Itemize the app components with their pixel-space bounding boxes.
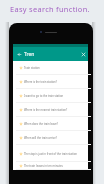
staticText: Train station bbox=[24, 66, 40, 70]
staticText: Where is the train station? bbox=[24, 80, 57, 84]
button[interactable]: Back bbox=[13, 47, 88, 61]
staticText: When does the train leave? bbox=[24, 122, 59, 126]
staticText: The train leaves in ten minutes bbox=[24, 164, 63, 168]
button[interactable]: Train station bbox=[13, 61, 88, 75]
staticText: When will the train arrive? bbox=[24, 136, 57, 140]
button[interactable]: The stop is just in front of the train s… bbox=[13, 145, 88, 162]
button[interactable]: Clear search bbox=[81, 52, 86, 57]
button[interactable]: When does the train leave? bbox=[13, 117, 88, 131]
staticText: Easy search function. bbox=[10, 4, 90, 14]
button[interactable]: Where is the nearest train station? bbox=[13, 103, 88, 117]
button[interactable]: Where is the train station? bbox=[13, 75, 88, 89]
staticText: Where is the nearest train station? bbox=[24, 108, 68, 112]
staticText: I want to go to the train station bbox=[24, 94, 64, 98]
button[interactable]: The train leaves in ten minutes bbox=[13, 162, 88, 170]
staticText: Tren bbox=[24, 51, 35, 58]
staticText: The stop is just in front of the train s… bbox=[24, 152, 77, 156]
button[interactable]: When will the train arrive? bbox=[13, 131, 88, 145]
button[interactable]: Back bbox=[16, 51, 22, 57]
button[interactable]: I want to go to the train station bbox=[13, 89, 88, 103]
